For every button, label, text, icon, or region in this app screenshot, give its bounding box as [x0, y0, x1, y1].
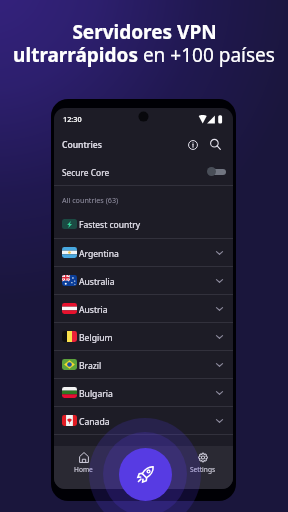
staticText: Brazil	[79, 360, 102, 372]
button[interactable]: Brazil	[54, 351, 233, 378]
staticText: Servidores VPN	[72, 19, 217, 45]
button[interactable]: Home	[54, 446, 113, 489]
button[interactable]: Info	[183, 135, 202, 154]
button[interactable]: Connect	[119, 448, 172, 501]
staticText: Countries	[62, 139, 102, 151]
button[interactable]: Fastest country	[54, 210, 233, 238]
staticText: 12:30	[63, 114, 82, 124]
staticText: Bulgaria	[79, 388, 113, 400]
staticText: Home	[74, 465, 93, 474]
staticText: Settings	[190, 465, 216, 474]
staticText: Austria	[79, 304, 108, 316]
button[interactable]: Bulgaria	[54, 379, 233, 406]
button[interactable]: Belgium	[54, 323, 233, 350]
staticText: Argentina	[79, 248, 119, 260]
staticText: All countries (63)	[62, 195, 119, 205]
staticText: ultrarrápidos en +100 países	[13, 42, 275, 68]
staticText: Australia	[79, 276, 115, 288]
staticText: Canada	[79, 416, 110, 428]
button[interactable]: Settings	[173, 446, 233, 489]
button[interactable]: Austria	[54, 295, 233, 322]
staticText: Secure Core	[62, 167, 110, 178]
staticText: Fastest country	[79, 219, 141, 231]
button[interactable]: Search	[206, 135, 225, 154]
staticText: Belgium	[79, 332, 113, 344]
button[interactable]: Argentina	[54, 239, 233, 266]
button[interactable]: Secure Core	[54, 157, 233, 185]
button[interactable]: Canada	[54, 407, 233, 434]
button[interactable]: Australia	[54, 267, 233, 294]
